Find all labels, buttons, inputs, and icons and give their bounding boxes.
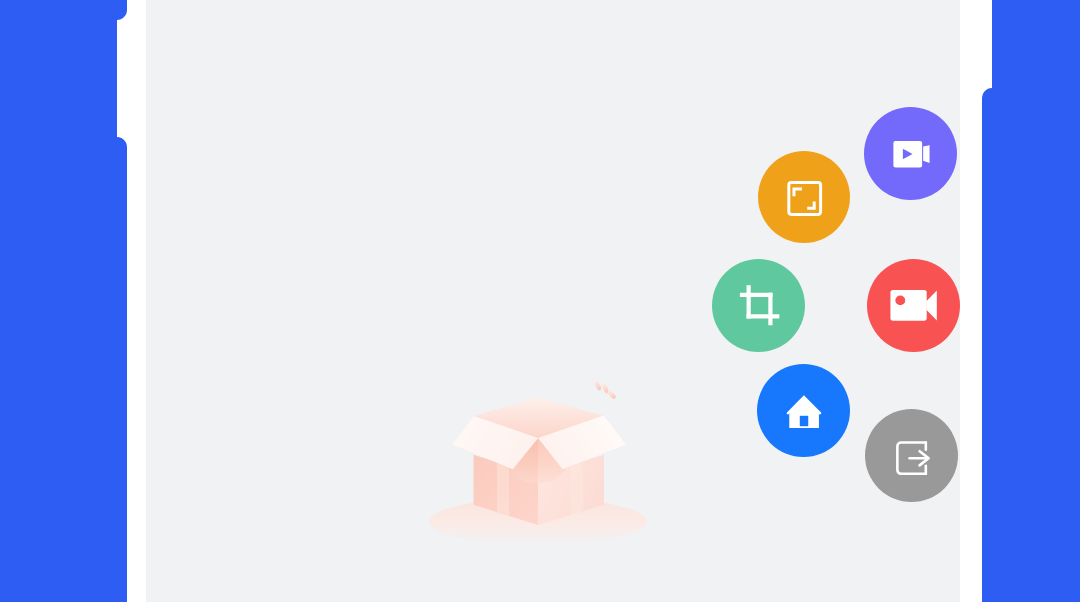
button[interactable]: Exit: [865, 409, 958, 502]
button[interactable]: Fit to screen: [758, 151, 850, 243]
button[interactable]: Home: [757, 364, 850, 457]
button[interactable]: Play video: [864, 107, 957, 200]
button[interactable]: Crop: [712, 259, 805, 352]
button[interactable]: Record video: [867, 259, 960, 352]
